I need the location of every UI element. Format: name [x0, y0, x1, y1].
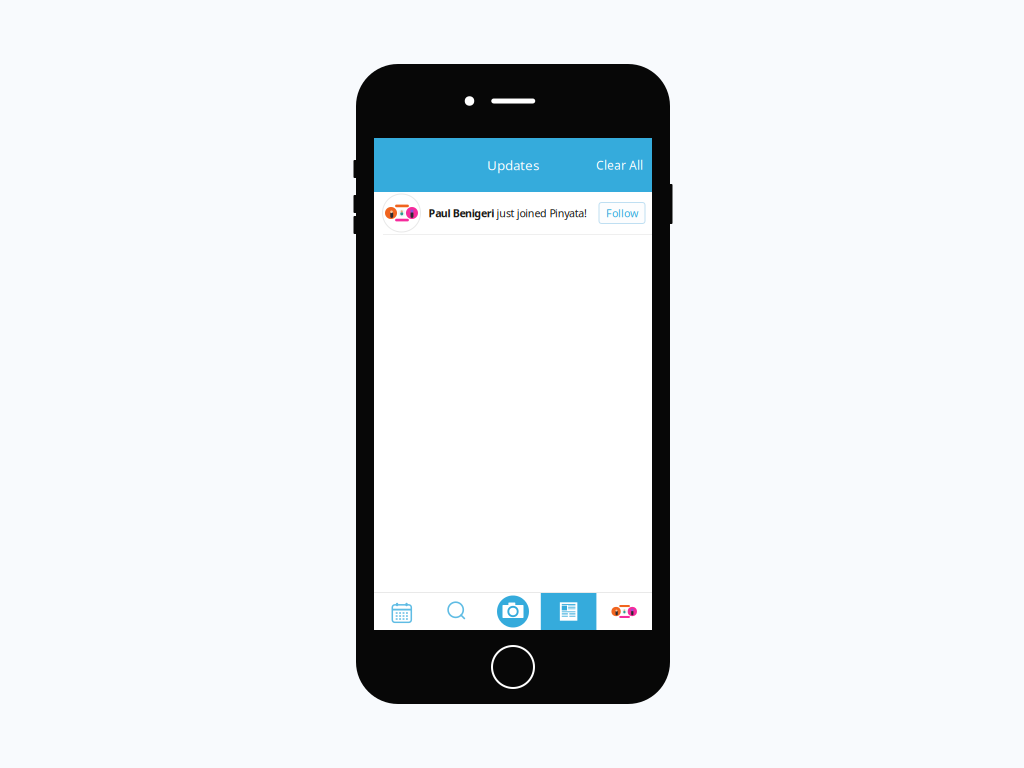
staticText: Paul Benigeri just joined Pinyata!	[428, 206, 587, 220]
button[interactable]: Paul Benigeri just joined Pinyata!	[374, 192, 652, 234]
button[interactable]: Clear All	[583, 150, 652, 180]
button[interactable]: Events	[374, 593, 430, 630]
staticText: Updates	[487, 156, 539, 174]
button[interactable]: Follow	[599, 202, 645, 223]
button[interactable]: Profile	[596, 593, 652, 630]
button[interactable]: Camera	[485, 593, 541, 630]
button[interactable]: Updates	[541, 593, 596, 630]
staticText: Follow	[606, 206, 638, 220]
staticText: Clear All	[596, 157, 643, 173]
button[interactable]: Search	[430, 593, 485, 630]
